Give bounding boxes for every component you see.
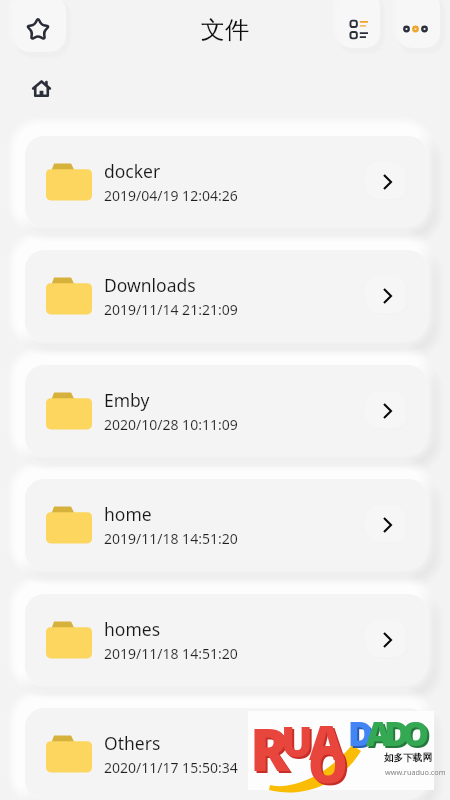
staticText: 2019/04/19 12:04:26 <box>104 186 238 205</box>
staticText: 2020/11/17 15:50:34 <box>104 758 238 777</box>
button[interactable]: Open folder <box>368 165 406 199</box>
staticText: Downloads <box>104 273 196 297</box>
staticText: R <box>252 711 292 790</box>
staticText: A <box>311 711 346 776</box>
staticText: A <box>368 712 393 758</box>
staticText: homes <box>104 617 161 641</box>
staticText: D <box>384 710 409 756</box>
button[interactable]: Open folder <box>368 508 406 542</box>
staticText: A <box>366 710 391 756</box>
button[interactable]: List view <box>337 0 380 48</box>
staticText: O <box>310 732 350 800</box>
button[interactable]: Open folder <box>368 623 406 657</box>
staticText: 文件 <box>0 15 450 45</box>
button[interactable]: docker <box>25 136 427 227</box>
button[interactable]: Favorites <box>13 0 66 52</box>
button[interactable]: Others <box>25 708 427 799</box>
staticText: home <box>104 502 152 526</box>
staticText: D <box>348 710 373 756</box>
button[interactable]: Downloads <box>25 250 427 341</box>
staticText: Others <box>104 731 161 755</box>
staticText: 2019/11/18 14:51:20 <box>104 529 238 548</box>
staticText: 如多下载网 <box>384 752 432 764</box>
button[interactable]: Open folder <box>368 394 406 428</box>
staticText: 2019/11/18 14:51:20 <box>104 644 238 663</box>
staticText: docker <box>104 159 161 183</box>
button[interactable]: More options <box>397 0 440 48</box>
staticText: U <box>281 712 313 769</box>
staticText: R <box>250 709 290 788</box>
staticText: O <box>404 712 432 758</box>
staticText: A <box>309 709 344 774</box>
button[interactable]: Emby <box>25 365 427 456</box>
staticText: O <box>402 710 430 756</box>
staticText: D <box>386 712 411 758</box>
staticText: 2019/11/14 21:21:09 <box>104 300 238 319</box>
button[interactable]: home <box>25 479 427 570</box>
staticText: U <box>283 714 315 771</box>
button[interactable]: Open folder <box>368 737 406 771</box>
staticText: O <box>308 730 348 798</box>
button[interactable]: Home <box>20 68 61 108</box>
staticText: D <box>350 712 375 758</box>
staticText: www.ruaduo.com <box>385 767 446 777</box>
button[interactable]: Open folder <box>368 279 406 313</box>
staticText: Emby <box>104 388 150 412</box>
button[interactable]: homes <box>25 594 427 685</box>
staticText: 2020/10/28 10:11:09 <box>104 415 238 434</box>
